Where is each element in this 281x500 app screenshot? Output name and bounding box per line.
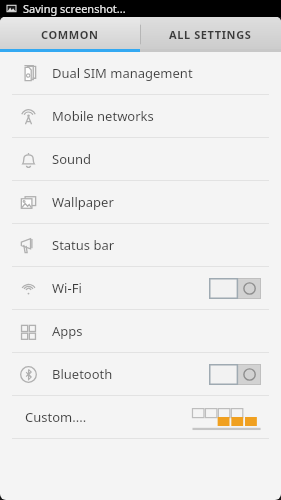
button[interactable]: Dual SIM management: [0, 52, 281, 94]
staticText: Dual SIM management: [52, 64, 193, 82]
button[interactable]: ALL SETTINGS: [140, 17, 281, 52]
staticText: Custom....: [25, 408, 87, 426]
button[interactable]: Custom....: [0, 396, 281, 438]
button[interactable]: Wallpaper: [0, 181, 281, 223]
staticText: ALL SETTINGS: [169, 27, 252, 42]
button[interactable]: COMMON: [0, 17, 140, 52]
staticText: Mobile networks: [52, 107, 154, 125]
staticText: Status bar: [52, 236, 115, 254]
button[interactable]: Wi-Fi: [0, 267, 281, 309]
staticText: Saving screenshot...: [23, 1, 126, 16]
staticText: Sound: [52, 150, 92, 168]
button[interactable]: Status bar: [0, 224, 281, 266]
button[interactable]: Mobile networks: [0, 95, 281, 137]
button[interactable]: Bluetooth: [0, 353, 281, 395]
button[interactable]: Apps: [0, 310, 281, 352]
staticText: Wi-Fi: [52, 279, 82, 297]
staticText: COMMON: [41, 27, 99, 42]
staticText: Bluetooth: [52, 365, 113, 383]
staticText: Apps: [52, 322, 83, 340]
button[interactable]: Sound: [0, 138, 281, 180]
button[interactable]: Toggle: [209, 278, 261, 299]
button[interactable]: Toggle: [209, 364, 261, 385]
staticText: Wallpaper: [52, 193, 114, 211]
